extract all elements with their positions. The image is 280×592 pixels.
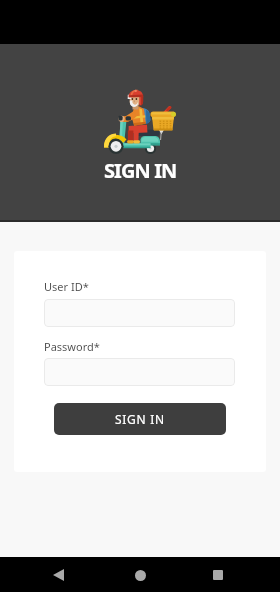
staticText: User ID* [44,279,89,294]
staticText: SIGN IN [104,157,177,184]
button[interactable]: Back [44,561,72,589]
button[interactable]: Home [126,561,154,589]
staticText: Password* [44,339,100,354]
staticText: SIGN IN [115,411,165,427]
button[interactable] [44,299,235,327]
button[interactable]: SIGN IN [54,403,226,435]
button[interactable] [44,358,235,386]
button[interactable]: Recent apps [204,561,232,589]
